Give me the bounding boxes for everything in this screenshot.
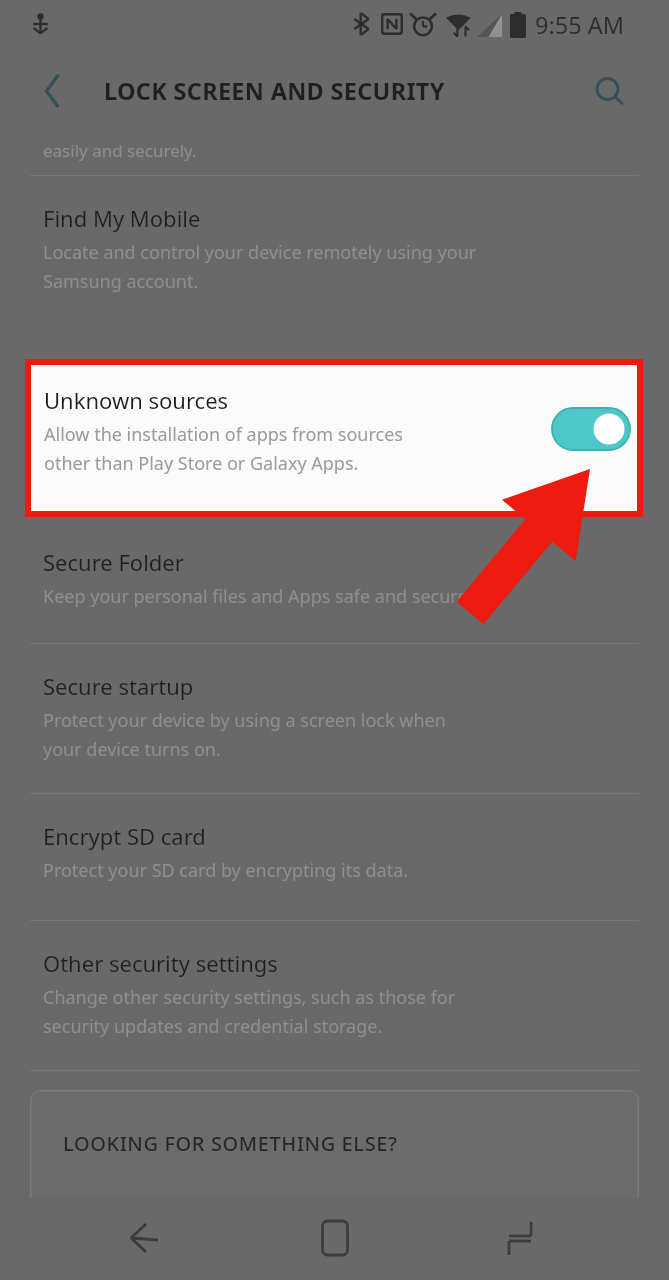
button[interactable]: Secure Folder [0, 520, 669, 643]
staticText: Find My Mobile [43, 203, 201, 233]
staticText: your device turns on. [43, 737, 221, 762]
staticText: security updates and credential storage. [43, 1014, 383, 1039]
button[interactable]: Unknown sources, on [550, 405, 632, 453]
button[interactable]: easily and securely. [0, 131, 669, 175]
button[interactable]: Search [581, 63, 637, 119]
button[interactable]: LOOKING FOR SOMETHING ELSE? [30, 1090, 639, 1198]
staticText: Allow the installation of apps from sour… [44, 422, 403, 447]
staticText: easily and securely. [43, 139, 197, 162]
staticText: Protect your SD card by encrypting its d… [43, 858, 409, 883]
staticText: Keep your personal files and Apps safe a… [43, 584, 473, 609]
staticText: Other security settings [43, 948, 278, 978]
staticText: Secure startup [43, 671, 194, 701]
button[interactable]: Navigate up [22, 61, 82, 121]
staticText: 9:55 AM [535, 9, 625, 41]
staticText: Change other security settings, such as … [43, 985, 456, 1010]
button[interactable]: Other security settings [0, 921, 669, 1070]
staticText: Unknown sources [44, 385, 229, 415]
staticText: other than Play Store or Galaxy Apps. [44, 451, 359, 476]
staticText: LOCK SCREEN AND SECURITY [104, 75, 445, 107]
button[interactable]: Unknown sources [31, 365, 637, 511]
staticText: LOOKING FOR SOMETHING ELSE? [63, 1130, 398, 1157]
button[interactable]: Find My Mobile [0, 176, 669, 314]
button[interactable]: Recent apps [488, 1206, 552, 1270]
button[interactable]: Back [113, 1206, 177, 1270]
button[interactable]: Secure startup [0, 644, 669, 793]
staticText: Samsung account. [43, 269, 199, 294]
staticText: Encrypt SD card [43, 821, 206, 851]
button[interactable]: Home [303, 1206, 367, 1270]
staticText: Protect your device by using a screen lo… [43, 708, 446, 733]
staticText: Locate and control your device remotely … [43, 240, 477, 265]
staticText: Secure Folder [43, 547, 184, 577]
button[interactable]: Encrypt SD card [0, 794, 669, 920]
